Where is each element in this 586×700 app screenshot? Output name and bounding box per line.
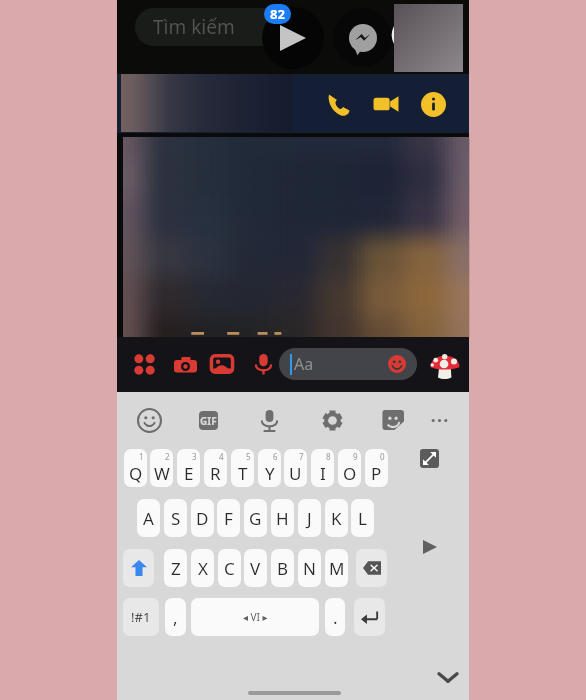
button[interactable]: Info [415, 86, 451, 122]
button[interactable]: 3 [177, 449, 200, 487]
button[interactable]: N [298, 549, 321, 587]
staticText: E [184, 462, 194, 485]
staticText: N [303, 557, 316, 580]
staticText: W [154, 462, 170, 485]
button[interactable]: Aa [279, 348, 417, 380]
button[interactable]: Settings [317, 405, 347, 435]
button[interactable]: 9 [338, 449, 361, 487]
staticText: 7 [299, 451, 304, 462]
button[interactable]: 2 [150, 449, 173, 487]
staticText: Aa [294, 353, 314, 375]
staticText: 2 [165, 451, 170, 462]
button[interactable]: Emoji [134, 405, 164, 435]
button[interactable]: Sticker [428, 347, 462, 381]
button[interactable] [354, 598, 385, 636]
staticText: V [250, 557, 261, 580]
button[interactable] [356, 549, 387, 587]
button[interactable]: 0 [365, 449, 388, 487]
button[interactable]: Voice message [249, 350, 277, 378]
staticText: A [143, 507, 154, 530]
button[interactable]: Play [262, 7, 324, 69]
staticText: G [249, 507, 262, 530]
button[interactable]: 1 [124, 449, 147, 487]
staticText: 9 [353, 451, 358, 462]
button[interactable]: D [191, 499, 214, 537]
button[interactable]: M [325, 549, 348, 587]
staticText: L [358, 507, 367, 530]
staticText: S [171, 507, 181, 530]
staticText: M [329, 557, 345, 580]
staticText: Q [129, 462, 143, 485]
button[interactable]: H [271, 499, 294, 537]
staticText: 1 [139, 451, 144, 462]
button[interactable]: C [218, 549, 241, 587]
button[interactable]: More [424, 405, 454, 435]
staticText: I [320, 462, 326, 485]
button[interactable]: . [325, 598, 345, 636]
button[interactable]: V [244, 549, 267, 587]
staticText: F [224, 507, 233, 530]
staticText: T [238, 462, 248, 485]
staticText: 6 [273, 451, 278, 462]
staticText: 4 [219, 451, 224, 462]
button[interactable]: Open menu [130, 350, 158, 378]
button[interactable]: Tìm kiếm [135, 8, 290, 46]
staticText: P [371, 462, 382, 485]
button[interactable]: , [165, 598, 186, 636]
staticText: O [343, 462, 357, 485]
staticText: GIF [200, 414, 217, 428]
button[interactable]: Expand keyboard [420, 449, 439, 468]
button[interactable]: Stickers [378, 405, 408, 435]
button[interactable]: Gallery [208, 350, 236, 378]
button[interactable]: Next [418, 535, 442, 559]
button[interactable]: Emoji [386, 353, 408, 375]
staticText: B [277, 557, 289, 580]
button[interactable]: G [244, 499, 267, 537]
button[interactable]: S [164, 499, 187, 537]
button[interactable]: Hide keyboard [436, 665, 460, 689]
button[interactable]: !#1 [123, 598, 159, 636]
staticText: . [333, 606, 338, 629]
staticText: , [173, 606, 178, 629]
button[interactable]: ◂ VI ▸ [191, 598, 319, 636]
button[interactable]: 8 [311, 449, 334, 487]
staticText: J [307, 507, 312, 530]
staticText: R [210, 462, 221, 485]
staticText: Y [265, 462, 275, 485]
staticText: 82 [270, 5, 285, 23]
staticText: K [331, 507, 342, 530]
button[interactable]: F [217, 499, 240, 537]
button[interactable]: Camera [171, 350, 199, 378]
staticText: ◂ VI ▸ [243, 610, 268, 624]
staticText: Tìm kiếm [153, 14, 235, 40]
button[interactable]: Video call [368, 86, 404, 122]
staticText: 3 [192, 451, 197, 462]
button[interactable]: J [298, 499, 321, 537]
staticText: H [276, 507, 289, 530]
button[interactable]: Messenger [333, 8, 392, 67]
button[interactable]: X [191, 549, 214, 587]
button[interactable]: Call [320, 86, 356, 122]
button[interactable]: 7 [284, 449, 307, 487]
button[interactable] [123, 549, 154, 587]
staticText: D [196, 507, 209, 530]
staticText: X [198, 557, 208, 580]
staticText: !#1 [131, 608, 151, 626]
staticText: 5 [246, 451, 251, 462]
button[interactable]: B [271, 549, 294, 587]
staticText: C [224, 557, 235, 580]
staticText: 0 [380, 451, 385, 462]
button[interactable]: 6 [258, 449, 281, 487]
button[interactable]: L [351, 499, 374, 537]
staticText: Z [171, 557, 181, 580]
button[interactable]: Voice input [254, 405, 284, 435]
button[interactable]: Z [164, 549, 187, 587]
staticText: U [289, 462, 302, 485]
button[interactable]: A [137, 499, 160, 537]
button[interactable]: GIF [199, 411, 218, 430]
button[interactable]: 5 [231, 449, 254, 487]
button[interactable]: 4 [204, 449, 227, 487]
staticText: 8 [326, 451, 331, 462]
button[interactable]: K [325, 499, 348, 537]
